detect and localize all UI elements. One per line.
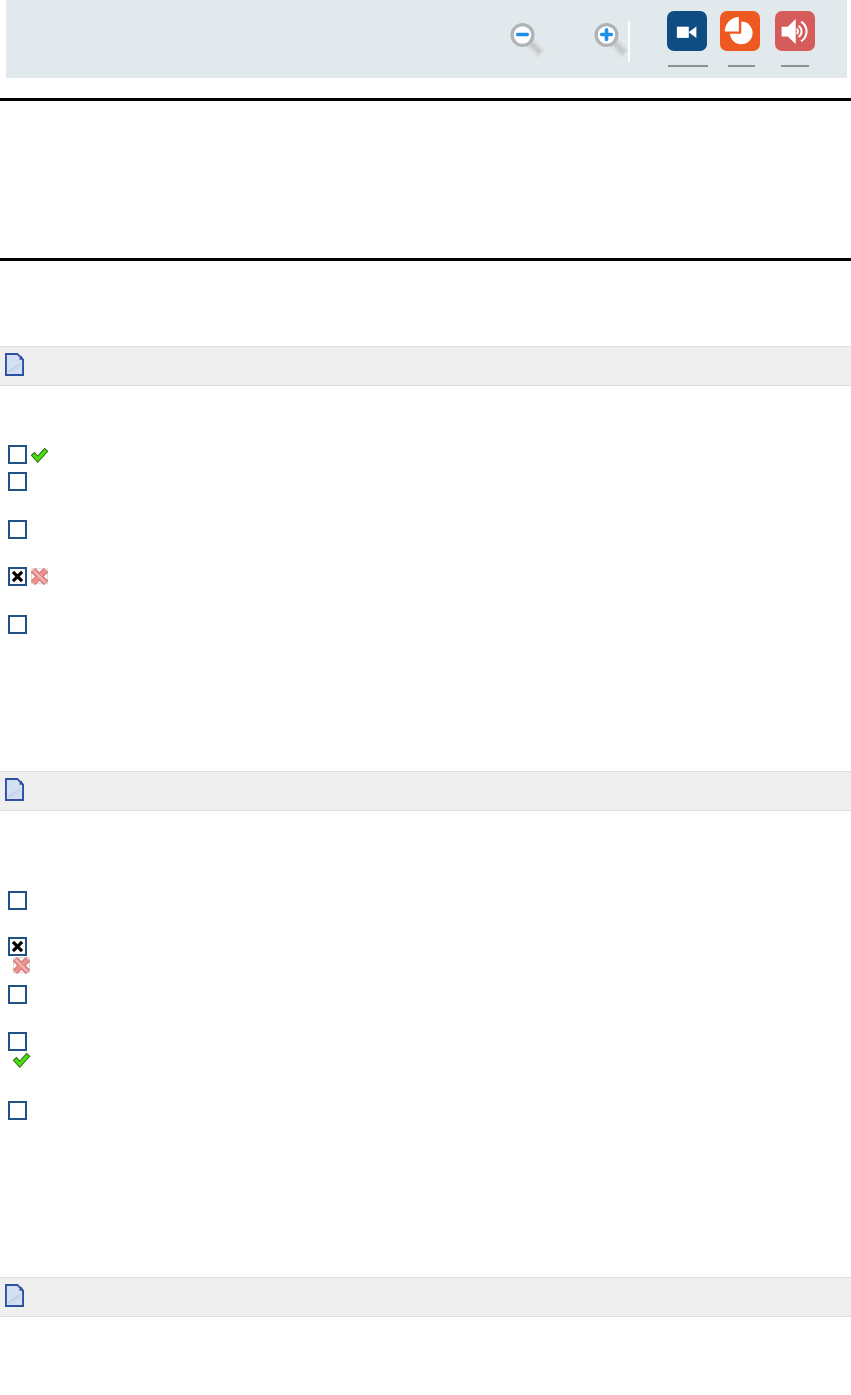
button[interactable]	[0, 1277, 851, 1317]
button[interactable]: Play sound	[763, 4, 809, 70]
button[interactable]: Checkbox	[8, 937, 27, 956]
button[interactable]: Zoom in	[588, 15, 625, 52]
button[interactable]: Checkbox	[8, 1032, 27, 1051]
button[interactable]: Checkbox	[8, 567, 27, 586]
button[interactable]	[0, 771, 851, 811]
button[interactable]: Record video	[655, 4, 701, 70]
button[interactable]: Checkbox	[8, 472, 27, 491]
button[interactable]: Checkbox	[8, 985, 27, 1004]
button[interactable]: Checkbox	[8, 520, 27, 539]
button[interactable]: Zoom out	[504, 15, 541, 52]
button[interactable]: Chart	[708, 4, 754, 70]
button[interactable]: Checkbox	[8, 891, 27, 910]
button[interactable]: Checkbox	[8, 445, 27, 464]
button[interactable]: Checkbox	[8, 1101, 27, 1120]
button[interactable]	[0, 346, 851, 386]
button[interactable]: Checkbox	[8, 615, 27, 634]
